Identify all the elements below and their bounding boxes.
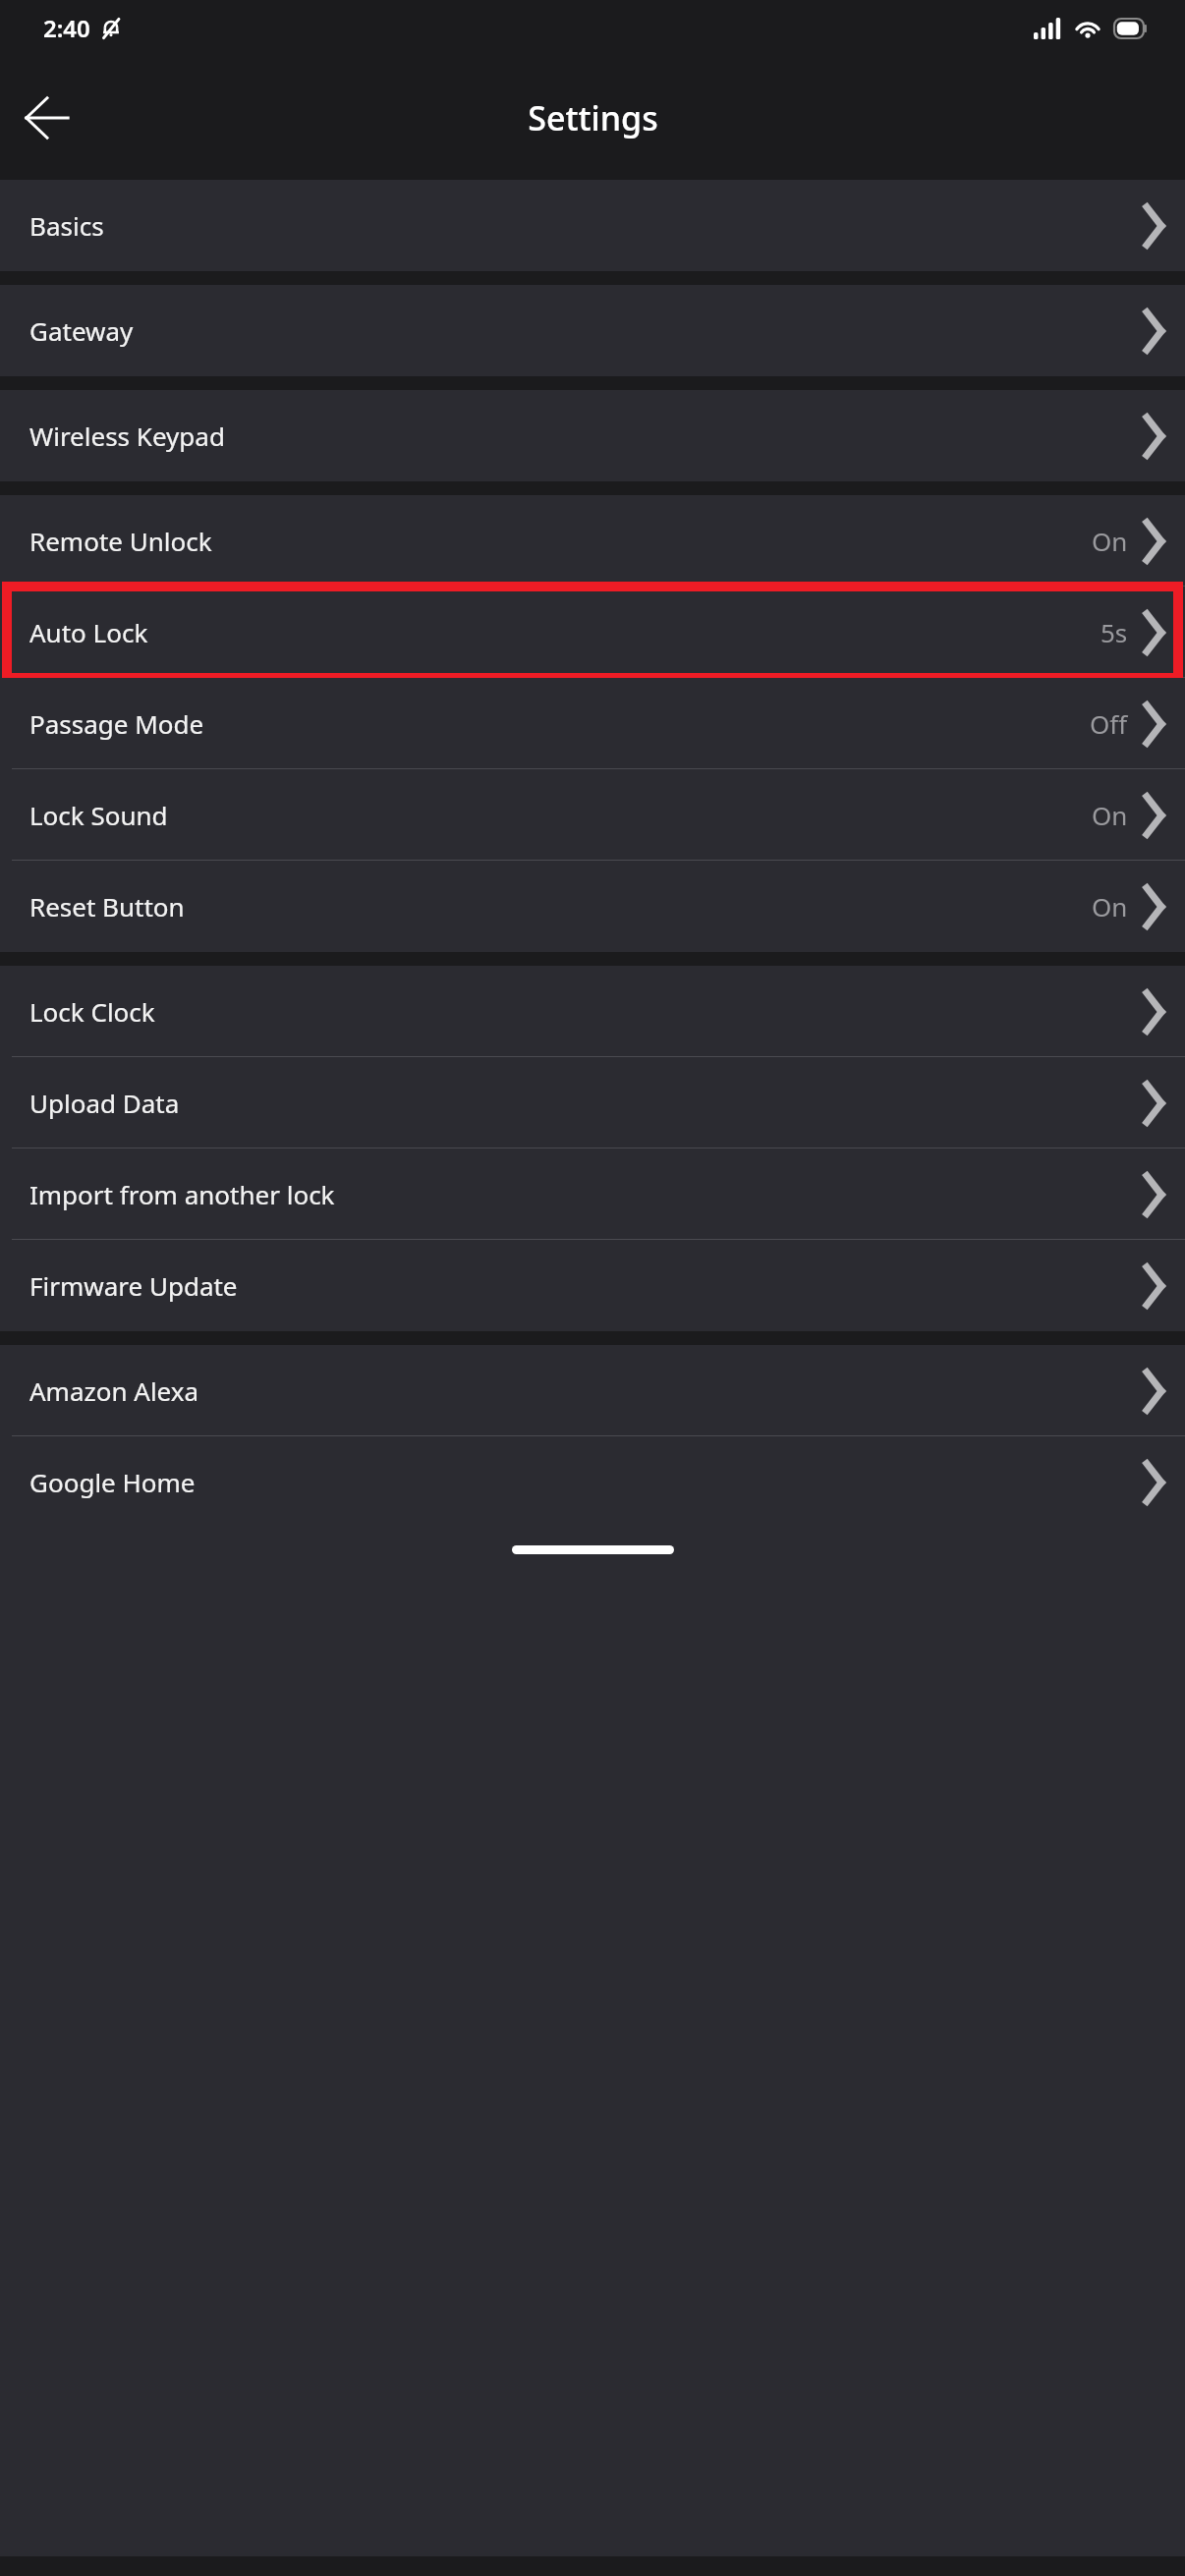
staticText: Remote Unlock: [29, 524, 212, 558]
staticText: Google Home: [29, 1465, 196, 1499]
staticText: Reset Button: [29, 889, 185, 924]
staticText: Firmware Update: [29, 1268, 238, 1303]
staticText: On: [1092, 798, 1128, 832]
button[interactable]: Google Home: [0, 1436, 1185, 1528]
button[interactable]: Basics: [0, 180, 1185, 271]
staticText: Basics: [29, 208, 104, 243]
button[interactable]: Amazon Alexa: [0, 1345, 1185, 1436]
staticText: Settings: [528, 95, 658, 140]
staticText: Passage Mode: [29, 706, 204, 741]
button[interactable]: Back: [12, 83, 83, 153]
staticText: Lock Sound: [29, 798, 168, 832]
button[interactable]: Passage Mode: [0, 678, 1185, 769]
button[interactable]: Lock Clock: [0, 966, 1185, 1057]
staticText: Upload Data: [29, 1086, 180, 1120]
staticText: Amazon Alexa: [29, 1373, 199, 1408]
button[interactable]: Auto Lock: [0, 587, 1185, 678]
button[interactable]: Wireless Keypad: [0, 390, 1185, 481]
button[interactable]: Remote Unlock: [0, 495, 1185, 587]
button[interactable]: Firmware Update: [0, 1240, 1185, 1331]
button[interactable]: Reset Button: [0, 861, 1185, 952]
staticText: On: [1092, 889, 1128, 924]
staticText: Off: [1090, 706, 1128, 741]
button[interactable]: Import from another lock: [0, 1148, 1185, 1240]
staticText: Auto Lock: [29, 615, 148, 649]
staticText: 5s: [1100, 615, 1128, 649]
button[interactable]: Upload Data: [0, 1057, 1185, 1148]
staticText: Lock Clock: [29, 994, 155, 1029]
staticText: Wireless Keypad: [29, 419, 225, 453]
button[interactable]: Lock Sound: [0, 769, 1185, 861]
staticText: Import from another lock: [29, 1177, 335, 1211]
staticText: 2:40: [43, 12, 90, 44]
staticText: On: [1092, 524, 1128, 558]
staticText: Gateway: [29, 313, 134, 348]
button[interactable]: Gateway: [0, 285, 1185, 376]
